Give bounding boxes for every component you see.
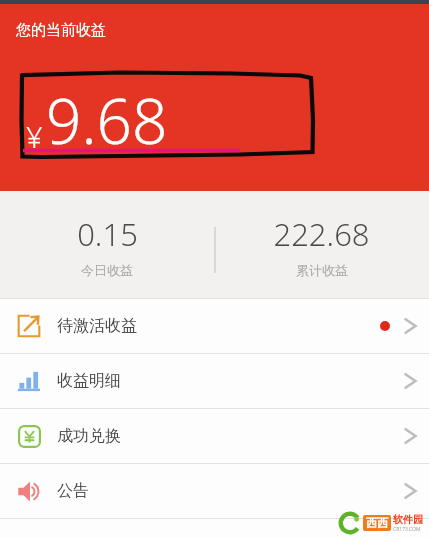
staticText: CR173.COM (393, 526, 421, 533)
button[interactable]: 222.68 (214, 191, 429, 299)
other: 成功兑换 (18, 425, 41, 448)
staticText: 今日收益 (81, 262, 133, 278)
staticText: 公告 (57, 481, 89, 501)
staticText: 成功兑换 (57, 426, 121, 446)
button[interactable]: 公告 (0, 464, 429, 518)
staticText: 收益明细 (57, 371, 121, 391)
button[interactable]: 待激活收益 (0, 299, 429, 353)
staticText: 222.68 (273, 213, 370, 255)
staticText: 9.68 (46, 78, 168, 162)
staticText: 累计收益 (296, 262, 348, 278)
button[interactable]: 收益明细 (0, 354, 429, 408)
button[interactable]: 0.15 (0, 191, 214, 299)
staticText: 0.15 (77, 213, 138, 255)
staticText: 您的当前收益 (16, 21, 106, 40)
other: 待激活收益 (17, 314, 41, 338)
staticText: ¥ (26, 117, 43, 156)
other: 收益明细 (17, 369, 41, 393)
button[interactable]: 成功兑换 (0, 409, 429, 463)
staticText: 西西 (366, 516, 388, 530)
staticText: 软件园 (393, 513, 423, 526)
staticText: 待激活收益 (57, 316, 137, 336)
other: 公告 (17, 479, 42, 504)
